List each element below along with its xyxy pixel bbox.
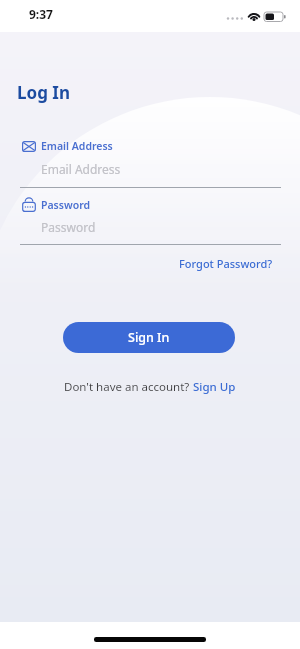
button[interactable] (20, 194, 281, 246)
staticText: 9:37 (29, 6, 53, 22)
staticText: Sign Up (190, 379, 236, 395)
staticText: Don't have an account? (64, 379, 190, 395)
staticText: Password (41, 219, 96, 235)
staticText: Log In (17, 81, 70, 104)
staticText: Email Address (41, 161, 121, 177)
button[interactable]: Forgot Password? (179, 256, 273, 271)
staticText: Sign In (128, 329, 170, 346)
button[interactable] (20, 136, 281, 189)
staticText: Forgot Password? (179, 256, 273, 271)
button[interactable]: Sign Up (190, 379, 236, 395)
staticText: Email Address (41, 139, 113, 153)
button[interactable]: Sign In (63, 322, 235, 353)
staticText: Password (41, 198, 91, 212)
